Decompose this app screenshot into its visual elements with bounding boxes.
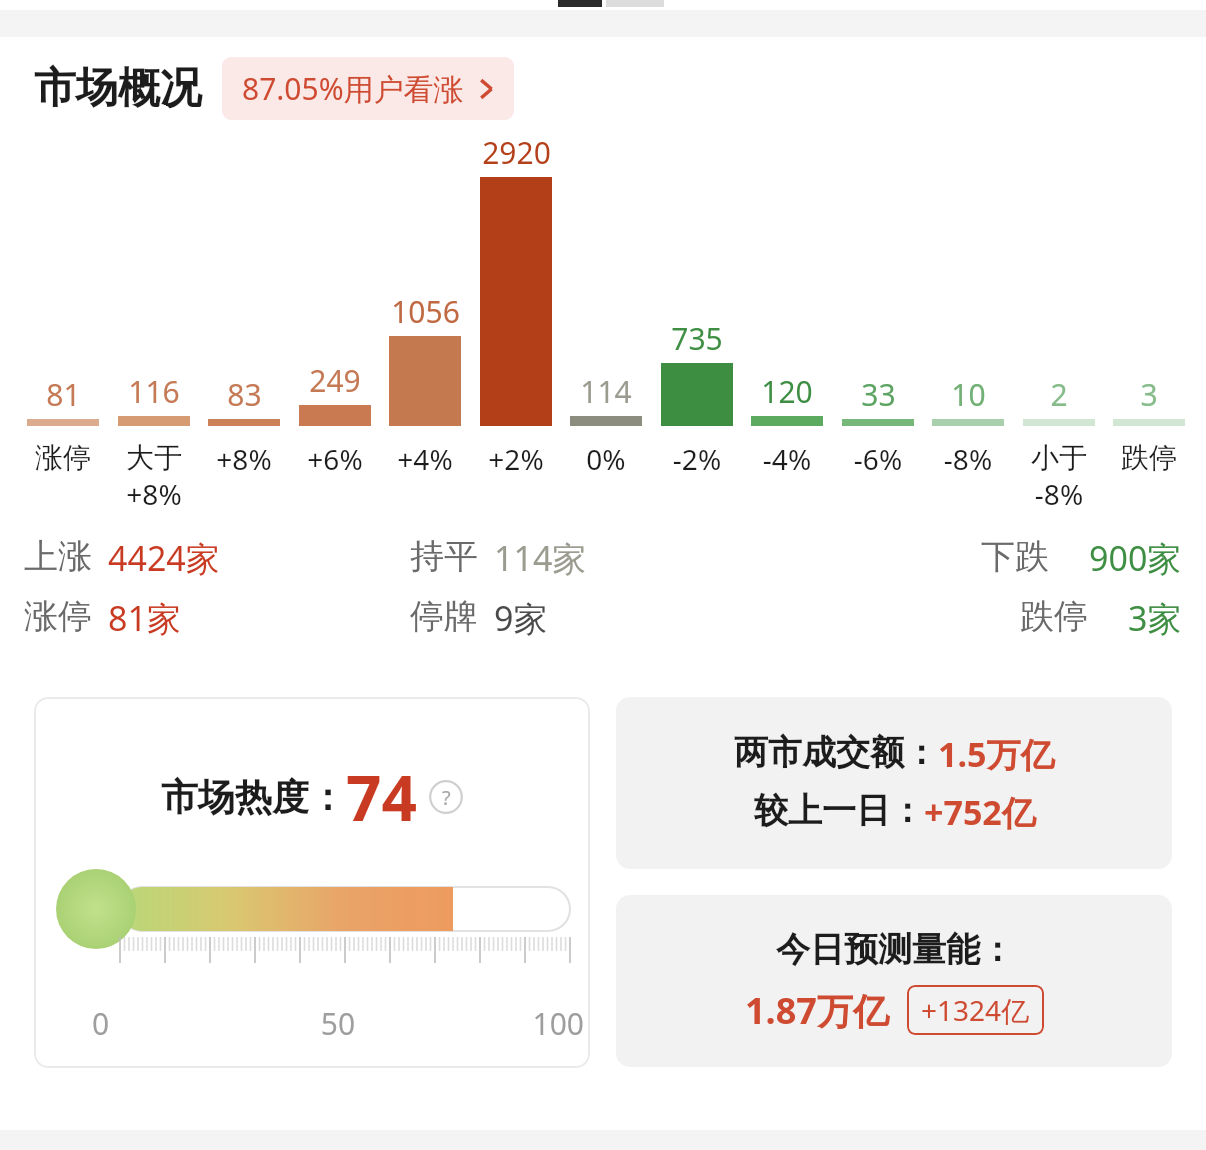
staticText: 持平	[410, 535, 478, 578]
staticText: 114家	[494, 535, 587, 581]
button[interactable]: 83	[205, 132, 283, 478]
staticText: 跌停	[1020, 595, 1088, 638]
staticText: 81家	[108, 595, 181, 641]
staticText: 涨停	[24, 595, 92, 638]
button[interactable]: 持平	[410, 535, 796, 581]
button[interactable]: 10	[929, 132, 1007, 478]
staticText: 0	[92, 1003, 256, 1044]
staticText: -8%	[929, 440, 1007, 478]
staticText: 2	[1050, 374, 1068, 415]
staticText: 735	[671, 318, 723, 359]
staticText: 1.5万亿	[938, 731, 1055, 777]
staticText: 10	[951, 374, 986, 415]
button[interactable]: 说明	[429, 780, 463, 814]
staticText: 0%	[567, 440, 645, 478]
staticText: 33	[861, 374, 896, 415]
staticText: +1324亿	[921, 991, 1030, 1029]
staticText: -8%	[1020, 475, 1098, 513]
button[interactable]: 两市成交额：	[616, 697, 1172, 869]
button[interactable]: 1056	[386, 132, 464, 478]
button[interactable]: 87.05%用户看涨	[222, 57, 514, 120]
button[interactable]: 120	[748, 132, 826, 478]
staticText: 大于	[115, 440, 193, 475]
button[interactable]: 市场热度：	[34, 697, 590, 1068]
staticText: 市场热度：	[161, 774, 346, 821]
staticText: 249	[309, 360, 361, 401]
button[interactable]: 上涨	[24, 535, 410, 581]
staticText: 50	[256, 1003, 420, 1044]
button[interactable]: 249	[296, 132, 374, 478]
staticText: -2%	[658, 440, 736, 478]
button[interactable]: 2920	[477, 132, 555, 478]
staticText: 9家	[494, 595, 548, 641]
staticText: 1056	[391, 291, 460, 332]
staticText: -4%	[748, 440, 826, 478]
button[interactable]: 3	[1110, 132, 1188, 475]
staticText: +6%	[296, 440, 374, 478]
button[interactable]: 2	[1020, 132, 1098, 513]
staticText: ?	[442, 784, 451, 811]
staticText: +2%	[477, 440, 555, 478]
button[interactable]: 33	[839, 132, 917, 478]
staticText: 2920	[482, 132, 551, 173]
staticText: 跌停	[1110, 440, 1188, 475]
button[interactable]: 涨停	[24, 595, 410, 641]
button[interactable]: 停牌	[410, 595, 796, 641]
staticText: 4424家	[108, 535, 220, 581]
staticText: 87.05%用户看涨	[242, 68, 464, 109]
staticText: 下跌	[981, 535, 1049, 578]
button[interactable]: 114	[567, 132, 645, 478]
staticText: 81	[46, 374, 81, 415]
staticText: 小于	[1020, 440, 1098, 475]
staticText: 涨停	[24, 440, 102, 475]
staticText: +752亿	[924, 789, 1036, 835]
button[interactable]: 跌停	[796, 595, 1182, 641]
staticText: 100	[420, 1003, 584, 1044]
staticText: -6%	[839, 440, 917, 478]
staticText: 两市成交额：	[734, 731, 938, 774]
staticText: 116	[128, 371, 180, 412]
staticText: 74	[346, 755, 417, 839]
button[interactable]: 116	[115, 132, 193, 513]
button[interactable]: 下跌	[796, 535, 1182, 581]
staticText: 上涨	[24, 535, 92, 578]
staticText: +8%	[205, 440, 283, 478]
staticText: 市场概况	[34, 62, 202, 115]
button[interactable]: 81	[24, 132, 102, 475]
staticText: 120	[761, 371, 813, 412]
staticText: 900家	[1089, 535, 1182, 581]
staticText: 3家	[1128, 595, 1182, 641]
staticText: 83	[227, 374, 262, 415]
button[interactable]: 今日预测量能：	[616, 895, 1172, 1067]
staticText: 3	[1140, 374, 1158, 415]
staticText: 较上一日：	[754, 789, 924, 832]
staticText: +8%	[115, 475, 193, 513]
button[interactable]: 735	[658, 132, 736, 478]
staticText: 114	[580, 371, 632, 412]
staticText: +4%	[386, 440, 464, 478]
staticText: 今日预测量能：	[776, 928, 1014, 971]
staticText: 停牌	[410, 595, 478, 638]
staticText: 1.87万亿	[745, 986, 889, 1035]
